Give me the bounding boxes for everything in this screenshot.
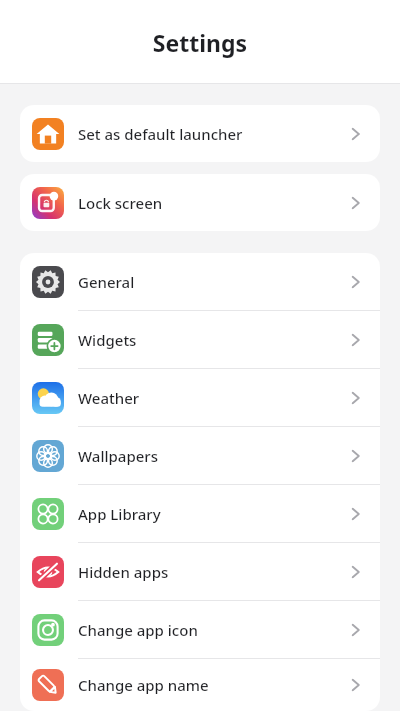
staticText: Weather: [78, 388, 348, 408]
staticText: Wallpapers: [78, 446, 348, 466]
staticText: Hidden apps: [78, 562, 348, 582]
staticText: App Library: [78, 504, 348, 524]
button[interactable]: Lock screen: [20, 174, 380, 231]
staticText: Change app icon: [78, 620, 348, 640]
other: Open Change app name: [348, 676, 366, 694]
button[interactable]: General: [20, 253, 380, 310]
button[interactable]: Set as default launcher: [20, 105, 380, 162]
other: Open App Library: [348, 505, 366, 523]
staticText: Settings: [0, 27, 400, 58]
staticText: Lock screen: [78, 193, 348, 213]
button[interactable]: App Library: [20, 485, 380, 542]
other: Open Weather: [348, 389, 366, 407]
button[interactable]: Widgets: [20, 311, 380, 368]
other: Open Set as default launcher: [348, 125, 366, 143]
other: Open Change app icon: [348, 621, 366, 639]
button[interactable]: Hidden apps: [20, 543, 380, 600]
staticText: General: [78, 272, 348, 292]
button[interactable]: Weather: [20, 369, 380, 426]
button[interactable]: Wallpapers: [20, 427, 380, 484]
other: Open Widgets: [348, 331, 366, 349]
other: Open Hidden apps: [348, 563, 366, 581]
button[interactable]: Change app name: [20, 659, 380, 711]
other: Open Wallpapers: [348, 447, 366, 465]
staticText: Change app name: [78, 675, 348, 695]
button[interactable]: Change app icon: [20, 601, 380, 658]
other: Open General: [348, 273, 366, 291]
staticText: Widgets: [78, 330, 348, 350]
other: Open Lock screen: [348, 194, 366, 212]
staticText: Set as default launcher: [78, 124, 348, 144]
